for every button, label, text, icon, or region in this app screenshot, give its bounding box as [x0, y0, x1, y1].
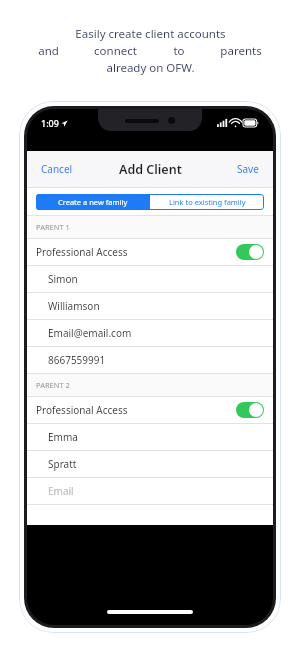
button[interactable]: Link to existing family [150, 194, 264, 210]
staticText: Professional Access [36, 403, 128, 417]
button[interactable]: Cancel [39, 158, 75, 180]
staticText: Cancel [41, 162, 73, 176]
button[interactable]: Create a new family [36, 194, 150, 210]
staticText: connect [94, 43, 137, 59]
staticText: Easily create client accounts [75, 26, 226, 42]
button[interactable]: Williamson [27, 293, 273, 319]
staticText: PARENT 1 [36, 222, 70, 232]
button[interactable]: Save [235, 158, 261, 180]
button[interactable]: Email@email.com [27, 320, 273, 346]
staticText: Emma [48, 430, 78, 444]
staticText: 8667559991 [48, 353, 106, 367]
staticText: Professional Access [36, 245, 128, 259]
button[interactable]: 8667559991 [27, 347, 273, 373]
button[interactable]: Email [27, 478, 273, 504]
staticText: to [173, 43, 185, 59]
button[interactable]: Spratt [27, 451, 273, 477]
staticText: Email@email.com [48, 326, 132, 340]
staticText: Add Client [119, 161, 182, 178]
button[interactable]: Professional Access toggle, on [236, 402, 264, 418]
staticText: Create a new family [58, 197, 128, 207]
staticText: Email [48, 484, 74, 498]
staticText: Spratt [48, 457, 77, 471]
button[interactable]: Emma [27, 424, 273, 450]
staticText: Save [237, 162, 259, 176]
staticText: Simon [48, 272, 78, 286]
staticText: Williamson [48, 299, 100, 313]
staticText: parents [220, 43, 262, 59]
staticText: PARENT 2 [36, 380, 70, 390]
button[interactable]: Simon [27, 266, 273, 292]
staticText: 1:09 [41, 117, 59, 129]
staticText: and [38, 43, 59, 59]
staticText: Link to existing family [169, 197, 246, 207]
button[interactable]: Professional Access [27, 397, 273, 423]
button[interactable]: Professional Access [27, 239, 273, 265]
button[interactable]: Professional Access toggle, on [236, 244, 264, 260]
staticText: already on OFW. [106, 60, 195, 76]
